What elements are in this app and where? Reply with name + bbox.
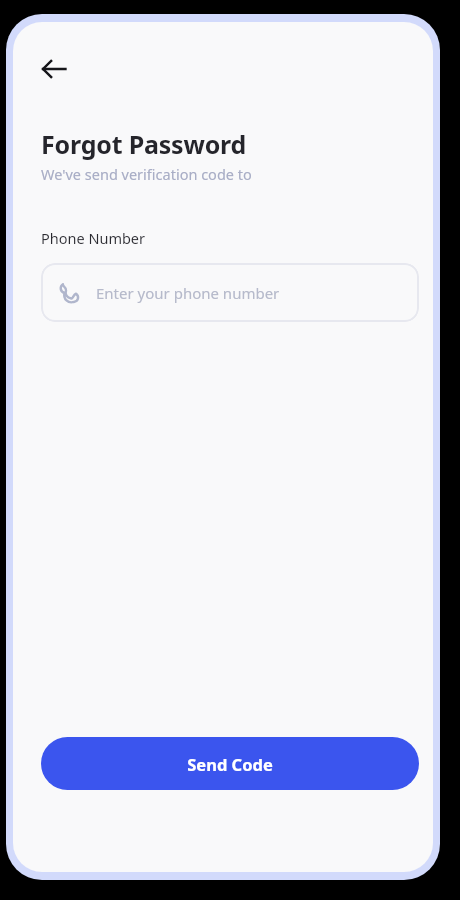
staticText: Phone Number: [41, 228, 146, 248]
button[interactable]: Back: [32, 47, 76, 91]
staticText: Forgot Password: [41, 127, 247, 161]
button[interactable]: Enter your phone number: [41, 263, 419, 322]
staticText: Send Code: [187, 753, 273, 775]
staticText: Enter your phone number: [96, 283, 280, 303]
staticText: We've send verification code to: [41, 164, 252, 184]
button[interactable]: Send Code: [41, 737, 419, 790]
